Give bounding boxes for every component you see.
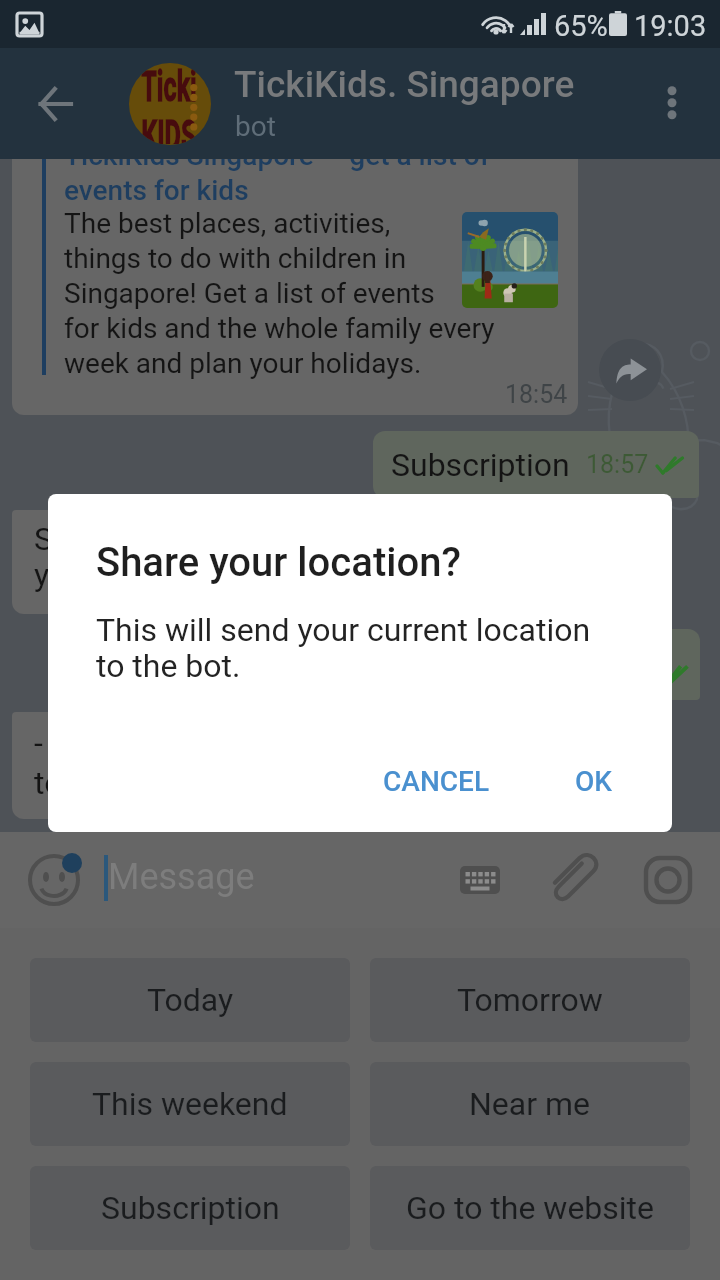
staticText: TickiKids. Singapore	[234, 63, 575, 106]
button[interactable]: More options	[636, 67, 708, 139]
button[interactable]: Subscription	[373, 431, 699, 498]
staticText: Subscription	[391, 446, 570, 484]
button[interactable]: OK	[563, 753, 624, 810]
staticText: This weekend	[92, 1085, 288, 1123]
button[interactable]: This weekend	[30, 1062, 350, 1146]
button[interactable]: Near me	[370, 1062, 690, 1146]
staticText: Near me	[469, 1085, 591, 1123]
button[interactable]: Subscription	[30, 1166, 350, 1250]
button[interactable]: Go to the website	[370, 1166, 690, 1250]
staticText: The best places, activities, things to d…	[64, 207, 495, 380]
staticText: CANCEL	[383, 765, 490, 798]
button[interactable]: Back	[8, 68, 102, 140]
staticText: KIDS	[141, 111, 197, 144]
staticText: Subscribe to receive your weekly digest	[34, 520, 321, 594]
staticText: 18:54	[505, 380, 568, 409]
staticText: Today	[147, 981, 234, 1019]
staticText: Subscription	[101, 1189, 280, 1227]
button[interactable]: Profile photo	[129, 63, 211, 145]
button[interactable]: Keyboard	[446, 846, 514, 914]
staticText: OK	[575, 765, 612, 798]
button[interactable]: Tomorrow	[370, 958, 690, 1042]
staticText: bot	[235, 110, 276, 143]
button[interactable]: Emoji	[18, 844, 90, 916]
staticText: TickiKids Singapore — get a list of even…	[64, 159, 490, 207]
staticText: 18:57	[586, 450, 649, 479]
staticText: Go to the website	[406, 1189, 655, 1227]
staticText: - Events for kids to do this week	[34, 724, 261, 801]
staticText: This will send your current location to …	[96, 611, 591, 685]
button[interactable]: Today	[30, 958, 350, 1042]
button[interactable]: Attach	[544, 846, 608, 910]
staticText: 19:03	[634, 9, 707, 43]
staticText: Share your location?	[96, 539, 462, 586]
staticText: 65%	[554, 9, 608, 43]
button[interactable]: Camera	[636, 848, 700, 912]
staticText: Tomorrow	[457, 981, 603, 1019]
staticText: Message	[108, 856, 255, 898]
button[interactable]: CANCEL	[371, 753, 502, 810]
staticText: Ticki	[141, 63, 197, 111]
button[interactable]: TickiKids Singapore — get a list of even…	[12, 159, 578, 415]
button[interactable]: Forward	[599, 339, 661, 401]
